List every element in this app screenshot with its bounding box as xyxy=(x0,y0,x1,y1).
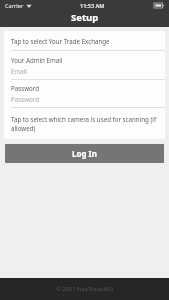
button[interactable]: Log In xyxy=(5,144,164,163)
button[interactable]: Your Admin Email xyxy=(4,51,165,79)
staticText: Password xyxy=(11,95,39,103)
other: Battery full xyxy=(154,3,164,8)
staticText: Carrier xyxy=(5,2,24,9)
staticText: Setup xyxy=(71,11,99,24)
staticText: Email xyxy=(11,67,27,75)
staticText: Password xyxy=(11,84,39,92)
staticText: Tap to select which camera is used for s… xyxy=(11,115,158,133)
button[interactable]: Tap to select which camera is used for s… xyxy=(4,108,165,139)
button[interactable]: Tap to select Your Trade Exchange xyxy=(4,31,165,50)
staticText: Tap to select Your Trade Exchange xyxy=(11,37,110,45)
staticText: 11:53 AM xyxy=(80,2,105,9)
staticText: Log In xyxy=(72,148,97,159)
staticText: © 2021 NexTrade360 xyxy=(56,285,113,293)
staticText: Your Admin Email xyxy=(11,56,63,64)
button[interactable]: Password xyxy=(4,80,165,107)
other: Wi-Fi signal xyxy=(26,3,32,9)
